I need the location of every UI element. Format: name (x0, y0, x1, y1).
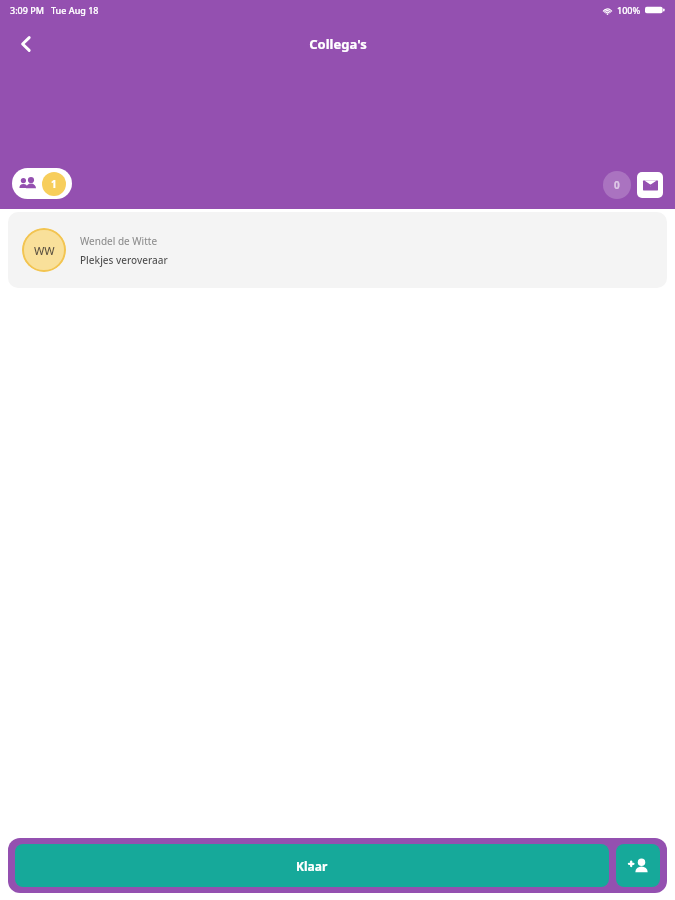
button[interactable]: Klaar (15, 844, 609, 887)
staticText: Klaar (296, 858, 328, 874)
button[interactable]: Add person (616, 844, 660, 887)
button[interactable]: Messages (637, 172, 663, 198)
button[interactable]: Back (6, 24, 46, 64)
button[interactable]: Pending invites (603, 171, 631, 199)
staticText: WW (34, 243, 55, 258)
staticText: Wendel de Witte (80, 234, 158, 248)
staticText: 100% (617, 4, 641, 16)
button[interactable]: WW (8, 212, 667, 288)
staticText: 1 (51, 177, 57, 191)
staticText: 3:09 PM (10, 4, 44, 16)
button[interactable]: 1 (12, 168, 72, 199)
staticText: Collega's (309, 35, 367, 53)
staticText: Tue Aug 18 (51, 4, 99, 16)
staticText: Plekjes veroveraar (80, 253, 168, 267)
staticText: 0 (614, 178, 620, 192)
